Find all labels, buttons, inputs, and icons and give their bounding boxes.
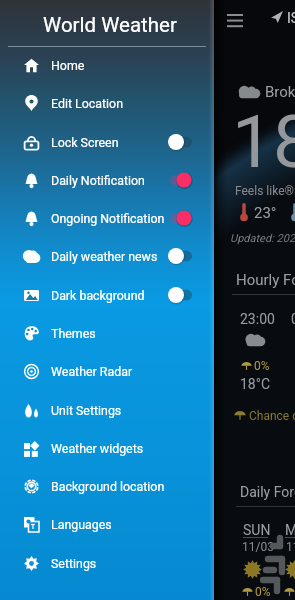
button[interactable]: Ongoing Notification <box>0 199 214 237</box>
button[interactable]: Lock Screen <box>0 123 214 161</box>
staticText: Home <box>51 58 85 73</box>
staticText: 11/03 <box>242 540 274 554</box>
button[interactable]: Dark background <box>0 276 214 314</box>
staticText: Broke <box>265 83 295 101</box>
staticText: Daily Foreca <box>240 484 295 500</box>
button[interactable]: Open navigation drawer <box>227 14 243 27</box>
staticText: Chance of <box>249 409 295 423</box>
staticText: Feels like®: 17 <box>235 184 295 198</box>
staticText: Updated: 2024/1 <box>230 232 295 245</box>
staticText: Edit Location <box>51 96 123 111</box>
staticText: 0% <box>255 585 271 599</box>
button[interactable]: Unit Settings <box>0 391 214 429</box>
button[interactable]: Home <box>0 46 214 84</box>
button[interactable]: Weather widgets <box>0 429 214 467</box>
staticText: 18°C <box>240 376 271 392</box>
button[interactable]: Daily Notification <box>0 161 214 199</box>
staticText: Ongoing Notification <box>51 211 165 226</box>
staticText: Themes <box>51 326 96 341</box>
button[interactable]: Edit Location <box>0 84 214 122</box>
staticText: World Weather <box>43 13 177 37</box>
button[interactable]: Settings <box>0 544 214 582</box>
staticText: 0% <box>254 359 270 373</box>
staticText: Daily Notification <box>51 173 145 188</box>
staticText: Languages <box>51 517 112 532</box>
staticText: SUN <box>243 522 271 538</box>
staticText: Dark background <box>51 288 145 303</box>
staticText: 11 <box>286 540 295 554</box>
staticText: Weather Radar <box>51 364 133 379</box>
staticText: IS <box>287 10 295 26</box>
staticText: M <box>285 522 295 538</box>
staticText: 18 <box>232 99 295 185</box>
staticText: Settings <box>51 556 97 571</box>
staticText: Background location <box>51 479 165 494</box>
staticText: Daily weather news <box>51 249 158 264</box>
button[interactable]: Weather Radar <box>0 352 214 390</box>
staticText: Hourly Fore <box>236 271 295 289</box>
staticText: Lock Screen <box>51 135 119 150</box>
staticText: Weather widgets <box>51 441 144 456</box>
staticText: 23:00 <box>240 311 275 327</box>
button[interactable]: Themes <box>0 314 214 352</box>
staticText: 23° <box>254 204 277 222</box>
staticText: Unit Settings <box>51 403 122 418</box>
button[interactable]: Languages <box>0 505 214 543</box>
button[interactable]: Background location <box>0 467 214 505</box>
staticText: 0 <box>291 311 295 327</box>
button[interactable]: Daily weather news <box>0 237 214 275</box>
